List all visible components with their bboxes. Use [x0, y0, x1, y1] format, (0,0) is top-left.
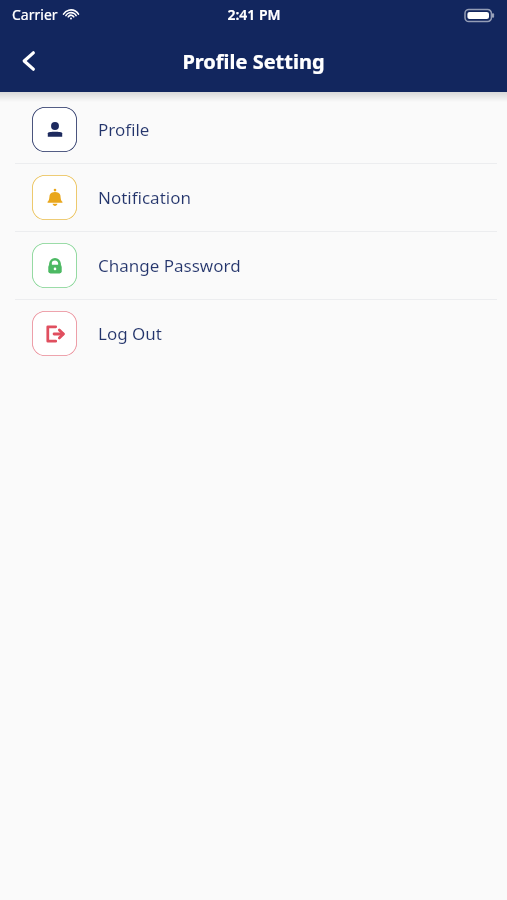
staticText: Change Password: [98, 254, 241, 277]
button[interactable]: Back: [6, 38, 52, 84]
staticText: Profile Setting: [182, 48, 325, 75]
staticText: 2:41 PM: [227, 5, 281, 24]
button[interactable]: Change Password: [0, 232, 507, 299]
staticText: Notification: [98, 186, 191, 209]
staticText: Log Out: [98, 322, 162, 345]
button[interactable]: Profile: [0, 96, 507, 163]
button[interactable]: Notification: [0, 164, 507, 231]
staticText: Profile: [98, 118, 150, 141]
staticText: Carrier: [12, 5, 58, 24]
button[interactable]: Log Out: [0, 300, 507, 367]
